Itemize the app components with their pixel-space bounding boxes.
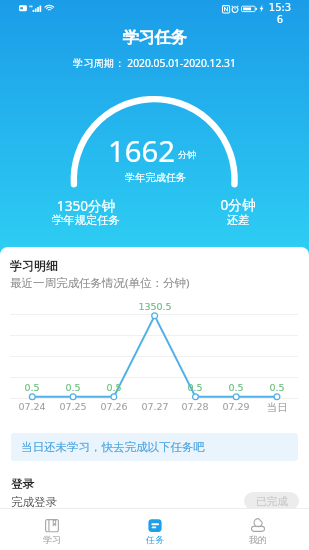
staticText: 当日还未学习，快去完成以下任务吧 [21, 440, 205, 454]
staticText: 07.24 [13, 401, 51, 412]
staticText: 0分钟 [198, 195, 278, 214]
staticText: 07.26 [95, 401, 133, 412]
staticText: 当日 [258, 401, 296, 414]
staticText: 登录 [11, 477, 34, 491]
button[interactable]: 当日还未学习，快去完成以下任务吧 [11, 433, 298, 461]
staticText: 1350.5 [135, 301, 175, 312]
staticText: 学年完成任务 [1, 171, 309, 184]
staticText: 我的 [249, 534, 267, 545]
staticText: 0.5 [104, 382, 124, 393]
staticText: 0.5 [185, 382, 205, 393]
staticText: 07.27 [136, 401, 174, 412]
staticText: 0.5 [267, 382, 287, 393]
button[interactable]: 已完成 [244, 492, 299, 510]
staticText: 最近一周完成任务情况(单位：分钟) [10, 275, 190, 291]
staticText: 07.25 [54, 401, 92, 412]
staticText: 0.5 [63, 382, 83, 393]
staticText: 学习周期： 2020.05.01-2020.12.31 [0, 56, 309, 70]
staticText: 07.28 [176, 401, 214, 412]
staticText: 学年规定任务 [46, 213, 126, 227]
button[interactable]: 学习 [0, 508, 103, 550]
staticText: 完成登录 [11, 495, 57, 509]
staticText: 已完成 [256, 495, 288, 508]
staticText: 任务 [146, 534, 164, 545]
staticText: 07.29 [217, 401, 255, 412]
staticText: 1662 [84, 131, 175, 171]
staticText: 分钟 [178, 149, 196, 160]
staticText: 1350分钟 [46, 196, 126, 215]
staticText: 0.5 [226, 382, 246, 393]
staticText: 0.5 [22, 382, 42, 393]
staticText: 学习明细 [10, 259, 58, 274]
staticText: 学习 [43, 534, 61, 545]
staticText: 还差 [198, 213, 278, 227]
staticText: 学习任务 [0, 27, 309, 47]
staticText: 15:36 [268, 2, 292, 26]
button[interactable]: 任务 [103, 508, 206, 550]
button[interactable]: 我的 [206, 508, 309, 550]
